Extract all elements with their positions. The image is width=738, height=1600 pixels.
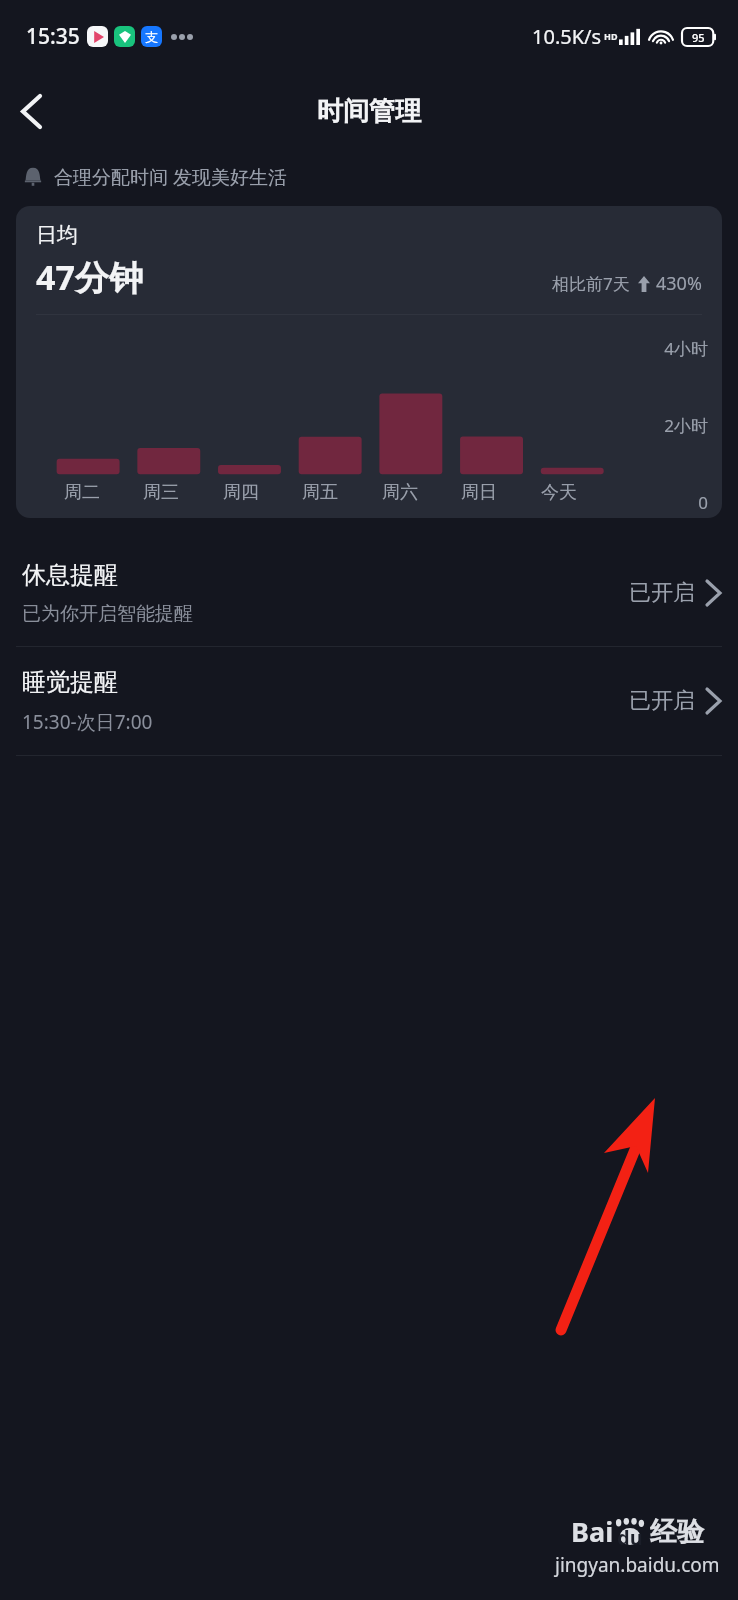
staticText: du [617,1524,643,1551]
staticText: 时间管理 [317,95,421,128]
staticText: 2小时 [16,414,708,437]
staticText: 休息提醒 [22,560,118,590]
staticText: 已为你开启智能提醒 [22,602,193,626]
staticText: 4小时 [16,337,708,360]
staticText: 相比前7天 [552,272,630,295]
staticText: 支 [145,29,158,45]
staticText: 15:30-次日7:00 [22,709,153,735]
staticText: 经验 [650,1515,704,1549]
staticText: 430% [656,271,702,296]
staticText: 15:35 [26,22,80,51]
staticText: 周四 [223,481,259,504]
button[interactable]: 睡觉提醒 [0,647,738,755]
staticText: 47分钟 [36,254,143,300]
staticText: 已开启 [629,579,695,607]
staticText: 周六 [382,481,418,504]
staticText: HD [604,30,618,42]
staticText: 95 [692,30,705,45]
staticText: 日均 [36,222,78,248]
staticText: 周二 [64,481,100,504]
staticText: 周五 [302,481,338,504]
staticText: 合理分配时间 发现美好生活 [54,164,287,190]
staticText: 0 [16,491,708,514]
button[interactable]: 日均 [16,206,722,518]
staticText: jingyan.baidu.com [555,1552,720,1578]
button[interactable]: 休息提醒 [0,540,738,646]
staticText: Bai [571,1513,614,1550]
staticText: 今天 [541,481,577,504]
staticText: 周三 [143,481,179,504]
button[interactable]: Back [0,80,62,142]
staticText: 周日 [461,481,497,504]
staticText: 睡觉提醒 [22,667,118,697]
staticText: 已开启 [629,687,695,715]
staticText: 10.5K/s [532,23,602,50]
